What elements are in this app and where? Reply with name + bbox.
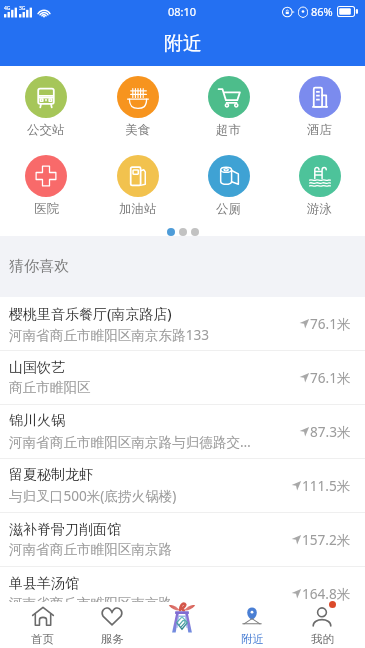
button[interactable]: 首页 xyxy=(8,602,77,648)
staticText: 157.2米 xyxy=(302,530,351,549)
staticText: 111.5米 xyxy=(302,476,351,495)
staticText: 留夏秘制龙虾 xyxy=(9,466,93,484)
staticText: 加油站 xyxy=(119,201,157,217)
button[interactable]: 锦川火锅 xyxy=(0,405,365,458)
staticText: 山国饮艺 xyxy=(9,359,65,377)
staticText: 3G xyxy=(19,5,26,12)
button[interactable]: 游泳 xyxy=(274,155,365,217)
staticText: 公厕 xyxy=(216,201,241,217)
staticText: 87.3米 xyxy=(310,422,351,441)
staticText: 医院 xyxy=(34,201,59,217)
button[interactable]: 山国饮艺 xyxy=(0,351,365,404)
button[interactable]: 酒店 xyxy=(274,76,365,138)
staticText: 酒店 xyxy=(307,122,332,138)
button[interactable]: 美食 xyxy=(92,76,183,138)
button[interactable]: 附近 xyxy=(217,602,287,648)
staticText: 商丘市睢阳区 xyxy=(9,379,91,396)
staticText: 86% xyxy=(311,4,333,19)
button[interactable]: 滋补脊骨刀削面馆 xyxy=(0,513,365,566)
staticText: 4G xyxy=(4,5,11,12)
button[interactable]: 服务 xyxy=(77,602,147,648)
staticText: 76.1米 xyxy=(310,368,351,387)
button[interactable]: 单县羊汤馆 xyxy=(0,567,365,620)
staticText: 公交站 xyxy=(27,122,65,138)
staticText: 河南省商丘市睢阳区南京路 xyxy=(9,595,173,612)
staticText: 锦川火锅 xyxy=(9,412,65,430)
staticText: 服务 xyxy=(101,632,124,646)
staticText: 164.8米 xyxy=(302,584,351,603)
staticText: 樱桃里音乐餐厅(南京路店) xyxy=(9,304,172,323)
staticText: 首页 xyxy=(31,632,54,646)
staticText: 附近 xyxy=(241,632,264,646)
staticText: 附近 xyxy=(164,32,202,56)
staticText: 游泳 xyxy=(307,201,332,217)
staticText: 超市 xyxy=(216,122,241,138)
button[interactable]: 医院 xyxy=(0,155,92,217)
staticText: 单县羊汤馆 xyxy=(9,575,79,593)
button[interactable]: 公厕 xyxy=(183,155,274,217)
button[interactable]: 我的 xyxy=(287,602,357,648)
button[interactable]: 加油站 xyxy=(92,155,183,217)
staticText: 76.1米 xyxy=(310,314,351,333)
button[interactable]: 留夏秘制龙虾 xyxy=(0,459,365,512)
staticText: 美食 xyxy=(125,122,150,138)
staticText: 河南省商丘市睢阳区南京路与归德路交… xyxy=(9,432,251,451)
button[interactable]: 樱桃里音乐餐厅(南京路店) xyxy=(0,297,365,350)
staticText: 河南省商丘市睢阳区南京东路133 xyxy=(9,325,210,344)
staticText: 猜你喜欢 xyxy=(9,257,69,276)
button[interactable]: 公交站 xyxy=(0,76,92,138)
staticText: 与归叉口500米(底捞火锅楼) xyxy=(9,486,177,505)
staticText: 滋补脊骨刀削面馆 xyxy=(9,521,121,539)
staticText: 河南省商丘市睢阳区南京路 xyxy=(9,541,173,558)
button[interactable]: Scan xyxy=(147,602,217,648)
button[interactable]: 超市 xyxy=(183,76,274,138)
staticText: 08:10 xyxy=(168,4,197,19)
staticText: 我的 xyxy=(311,632,334,646)
